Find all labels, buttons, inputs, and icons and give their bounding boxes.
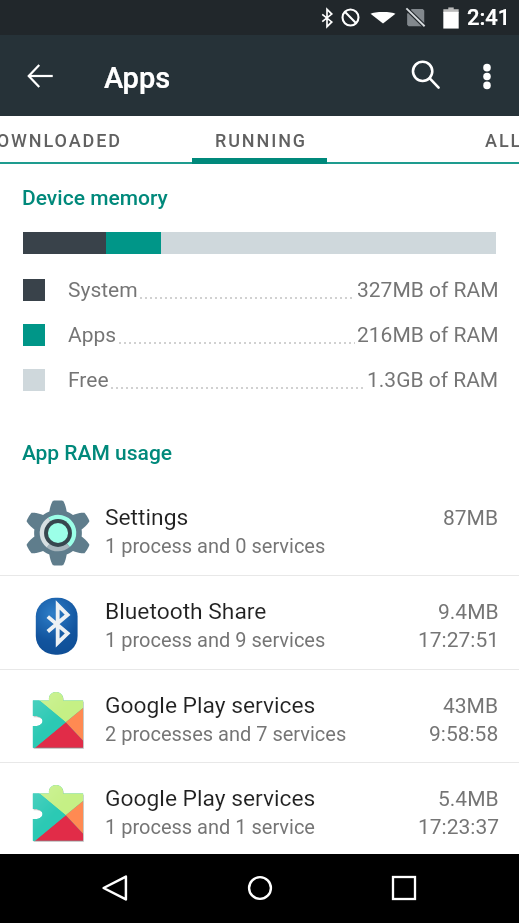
staticText: 2:41 [467,5,511,31]
button[interactable]: Search [402,51,450,99]
staticText: 43MB [443,694,499,719]
button[interactable]: RUNNING [193,117,328,164]
button[interactable]: Apps [0,313,519,357]
staticText: 9:58:58 [429,722,499,747]
staticText: 216MB of RAM [357,323,499,348]
staticText: 1 process and 9 services [105,628,326,651]
button[interactable]: ALL [464,117,519,164]
button[interactable]: DOWNLOADED [0,117,162,164]
button[interactable]: Navigate up [16,52,64,100]
staticText: RUNNING [215,130,307,151]
button[interactable]: Recent apps [380,864,428,912]
button[interactable]: System [0,268,519,312]
staticText: Apps [68,323,117,348]
staticText: System [68,278,138,303]
staticText: 87MB [443,506,499,531]
button[interactable]: Settings [0,482,519,575]
staticText: 1 process and 0 services [105,534,326,557]
staticText: Free [68,368,109,393]
button[interactable]: Google Play services [0,763,519,856]
staticText: Device memory [22,186,168,211]
staticText: 1 process and 1 service [105,815,315,838]
staticText: 17:27:51 [418,628,499,653]
button[interactable]: Back [91,864,139,912]
staticText: DOWNLOADED [0,130,122,151]
staticText: 1.3GB of RAM [367,368,499,393]
button[interactable]: Bluetooth Share [0,576,519,669]
staticText: Google Play services [105,785,316,812]
staticText: ALL [485,130,519,151]
staticText: 9.4MB [438,600,499,625]
staticText: App RAM usage [22,441,173,466]
staticText: Settings [105,504,189,531]
button[interactable]: Google Play services [0,670,519,763]
staticText: Apps [104,61,171,95]
staticText: Google Play services [105,692,316,719]
staticText: 17:23:37 [418,815,499,840]
staticText: 327MB of RAM [357,278,499,303]
staticText: 5.4MB [438,787,499,812]
button[interactable]: Home [236,864,284,912]
staticText: Bluetooth Share [105,598,267,625]
button[interactable]: Free [0,358,519,402]
staticText: 2 processes and 7 services [105,722,347,745]
button[interactable]: More options [463,52,511,100]
